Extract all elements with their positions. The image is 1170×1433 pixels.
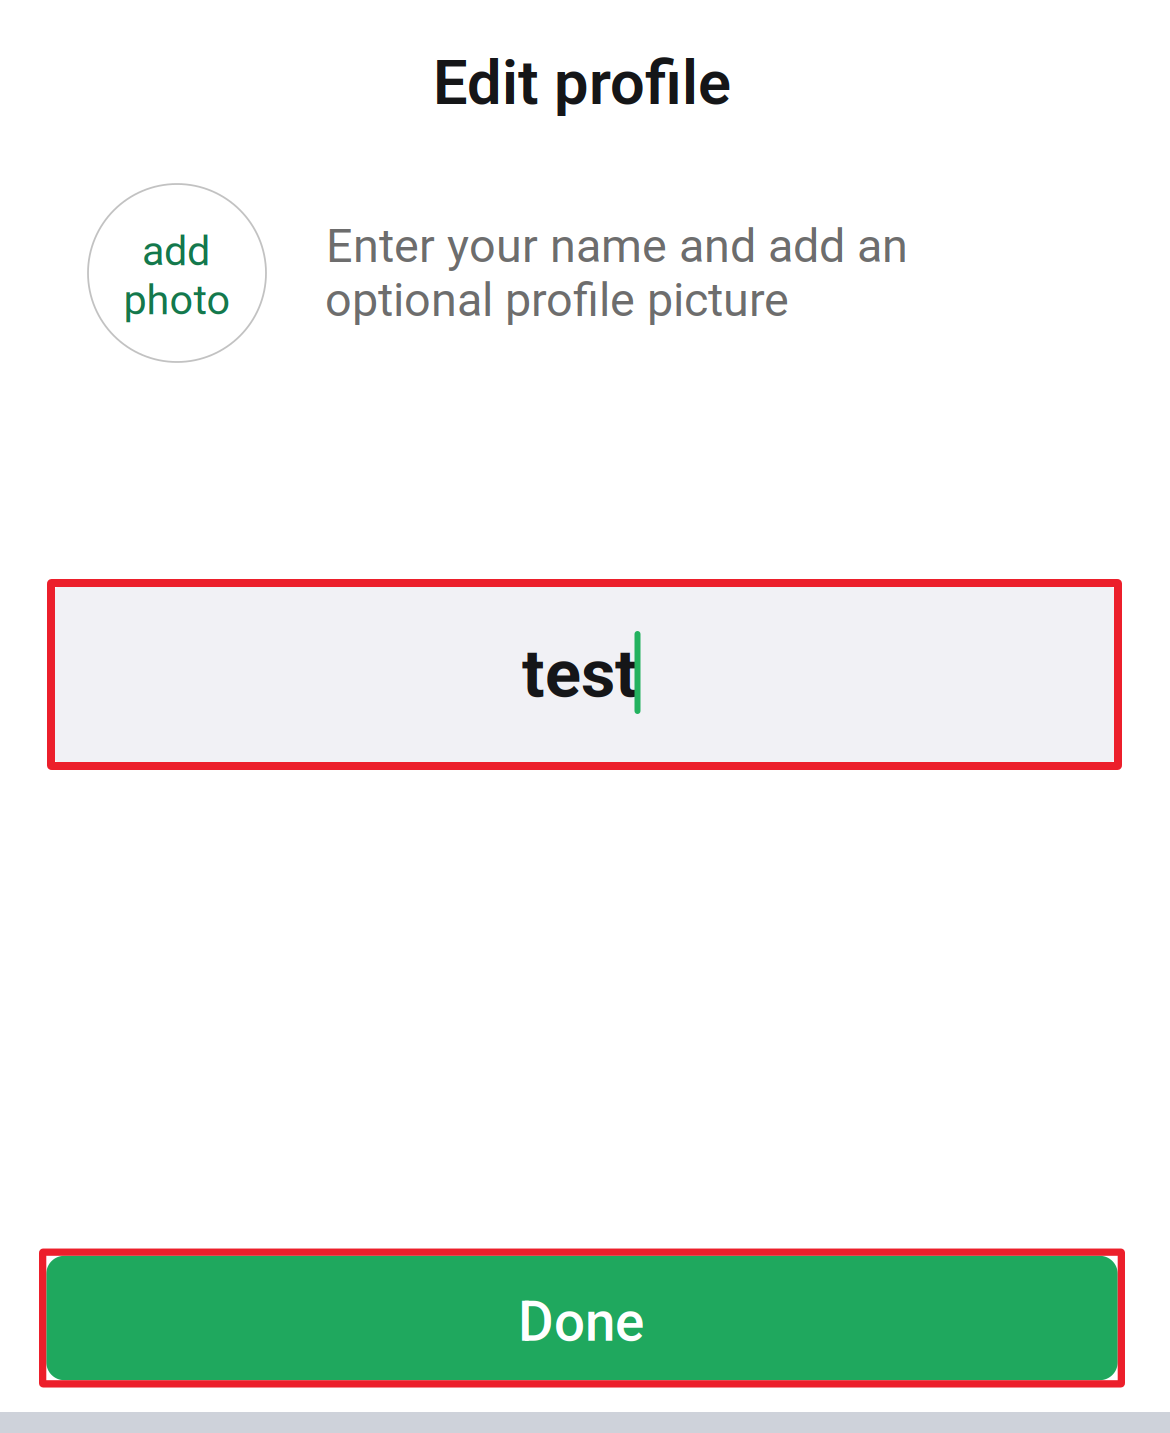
staticText: Done [518,1290,644,1354]
button[interactable]: Done [39,1248,1125,1387]
staticText: Enter your name and add an [326,219,908,273]
staticText: optional profile picture [325,273,789,327]
button[interactable]: test [47,579,1122,770]
staticText: Edit profile [433,47,731,119]
staticText: add [142,227,210,275]
staticText: photo [123,276,230,324]
button[interactable]: add photo [88,184,266,362]
staticText: test [522,635,638,713]
